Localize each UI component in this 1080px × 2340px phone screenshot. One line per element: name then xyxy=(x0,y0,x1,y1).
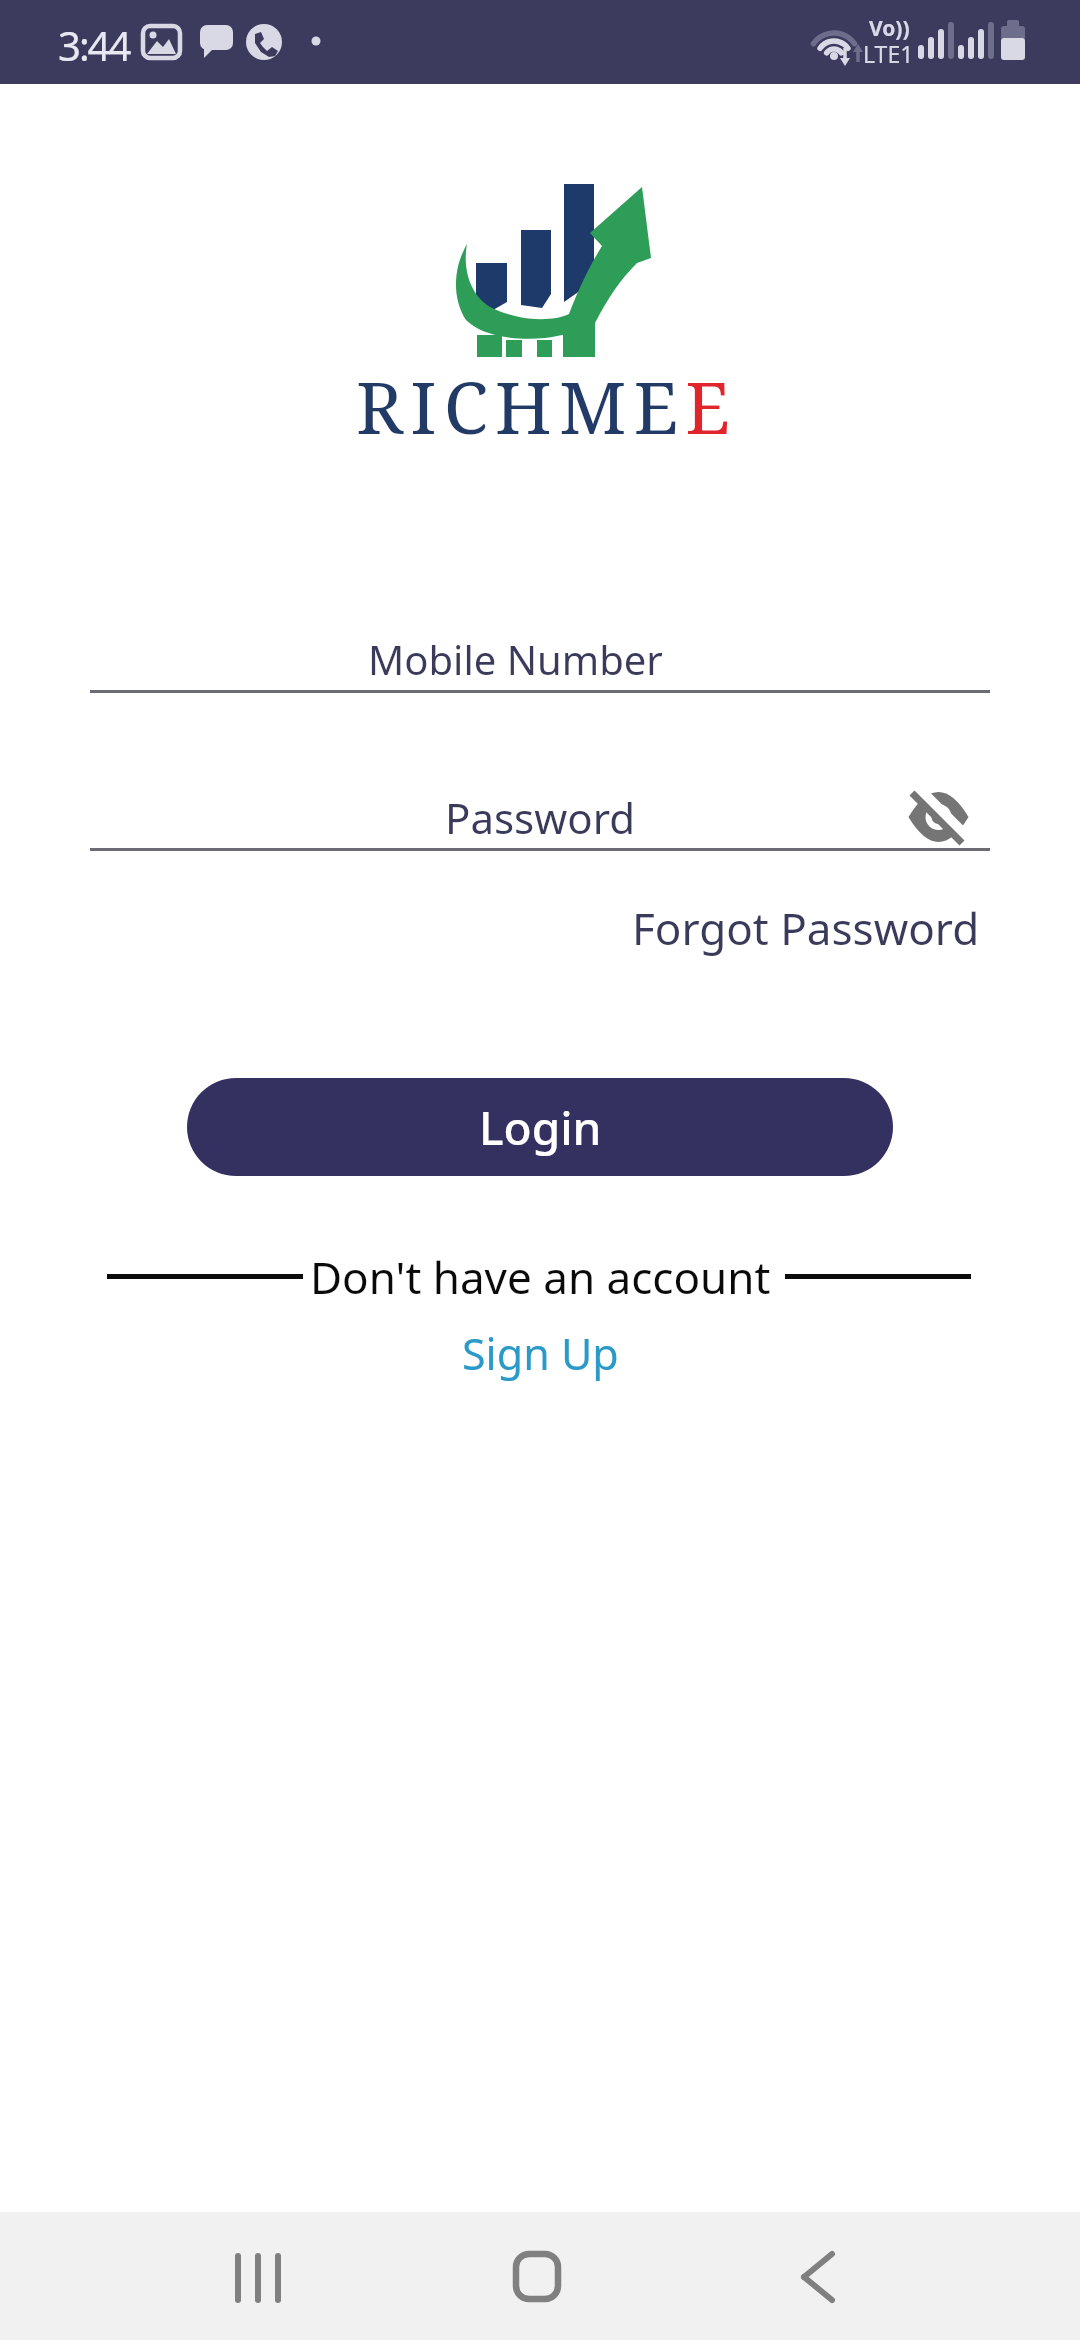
staticText: Sign Up xyxy=(462,1324,619,1383)
staticText: Forgot Password xyxy=(632,898,980,958)
button[interactable] xyxy=(216,2232,306,2322)
staticText: RICHMEE xyxy=(356,357,738,455)
staticText: Mobile Number xyxy=(368,632,663,686)
staticText: Vo)) xyxy=(869,14,910,43)
button[interactable]: Login xyxy=(187,1078,893,1176)
button[interactable] xyxy=(906,788,970,846)
button[interactable] xyxy=(772,2232,862,2322)
button[interactable]: Sign Up xyxy=(462,1324,619,1383)
staticText: Don't have an account xyxy=(310,1247,771,1307)
staticText: Password xyxy=(445,789,635,846)
button[interactable]: Forgot Password xyxy=(632,898,980,958)
staticText: 3:44 xyxy=(58,18,130,72)
button[interactable] xyxy=(492,2232,582,2322)
button[interactable] xyxy=(90,608,990,693)
staticText: Login xyxy=(479,1096,602,1159)
staticText: LTE1 xyxy=(863,38,914,69)
button[interactable] xyxy=(90,766,900,851)
